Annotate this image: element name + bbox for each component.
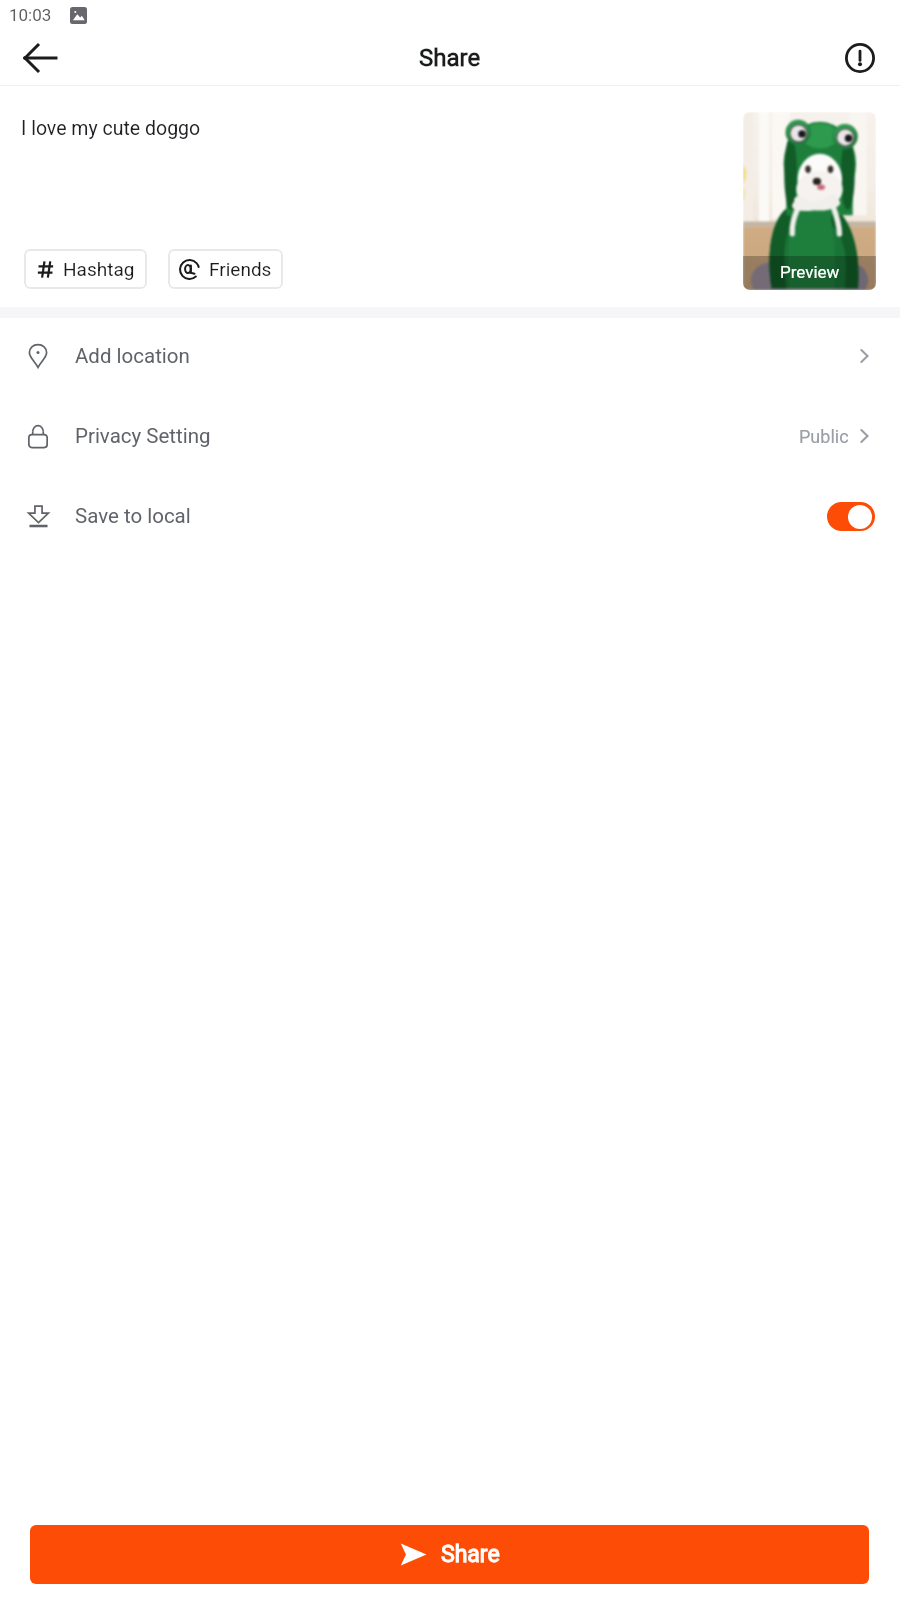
staticText: I love my cute doggo	[21, 117, 201, 140]
button[interactable]: Save to local toggle	[827, 502, 875, 531]
button[interactable]: Friends	[168, 249, 283, 289]
button[interactable]: Save to local	[0, 476, 900, 556]
button[interactable]: Add location	[0, 316, 900, 396]
staticText: Save to local	[75, 504, 191, 528]
button[interactable]: Back	[8, 30, 72, 85]
staticText: Share	[441, 1541, 500, 1568]
staticText: Preview	[780, 262, 840, 282]
staticText: Add location	[75, 344, 190, 368]
button[interactable]: Hashtag	[24, 249, 147, 289]
staticText: Public	[799, 426, 849, 447]
button[interactable]: Info	[828, 30, 892, 85]
button[interactable]: Privacy Setting	[0, 396, 900, 476]
button[interactable]: Share	[30, 1525, 869, 1584]
button[interactable]: Preview image	[743, 112, 876, 290]
staticText: Share	[419, 44, 481, 72]
staticText: Friends	[209, 258, 272, 280]
staticText: Hashtag	[63, 258, 135, 280]
staticText: Privacy Setting	[75, 424, 211, 448]
staticText: 10:03	[9, 5, 52, 25]
